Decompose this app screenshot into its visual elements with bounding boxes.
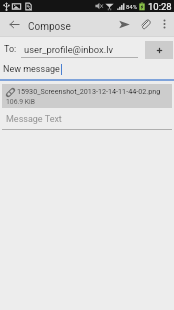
staticText: 84% [126,3,138,10]
button[interactable]: Send [114,12,134,36]
staticText: Compose [28,21,71,33]
button[interactable]: Navigate up [4,12,24,36]
staticText: 15930_Screenshot_2013-12-14-11-44-02.png [17,87,161,95]
button[interactable]: More options [156,12,172,36]
staticText: user_profile@inbox.lv [24,44,114,55]
staticText: New message [3,64,60,75]
staticText: To: [4,44,17,55]
staticText: 10:28 [148,1,172,12]
staticText: Message Text [6,114,62,125]
button[interactable]: Add recipient [145,41,173,59]
button[interactable]: Attach file [135,12,155,36]
staticText: 106.9 KiB [6,98,35,106]
button[interactable]: 15930_Screenshot_2013-12-14-11-44-02.png [2,84,172,108]
